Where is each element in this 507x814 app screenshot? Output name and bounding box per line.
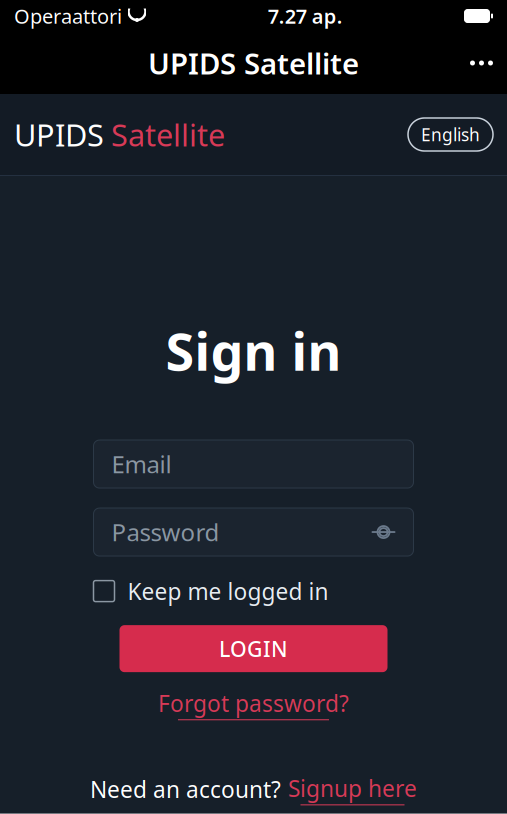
staticText: UPIDS <box>14 114 104 155</box>
staticText: Signup here <box>288 773 417 803</box>
staticText: LOGIN <box>219 634 288 663</box>
staticText: Operaattori <box>14 3 122 29</box>
button[interactable]: Forgot password? <box>158 680 349 728</box>
staticText: UPIDS Satellite <box>148 43 359 82</box>
button[interactable]: Show password <box>361 523 395 541</box>
button[interactable]: More options <box>456 44 507 81</box>
staticText: Sign in <box>165 316 341 385</box>
button[interactable]: LOGIN <box>119 625 387 672</box>
staticText: Email <box>111 448 171 480</box>
staticText: Keep me logged in <box>127 576 328 606</box>
staticText: Password <box>111 516 219 548</box>
button[interactable]: English <box>408 118 493 151</box>
staticText: Forgot password? <box>158 688 349 718</box>
button[interactable]: Keep me logged in <box>93 570 328 612</box>
staticText: 7.27 ap. <box>268 3 343 29</box>
staticText: Need an account? <box>90 774 281 804</box>
staticText: English <box>421 123 480 146</box>
staticText: Satellite <box>111 114 225 155</box>
button[interactable]: UPIDS <box>14 108 225 161</box>
button[interactable]: Signup here <box>288 773 417 805</box>
